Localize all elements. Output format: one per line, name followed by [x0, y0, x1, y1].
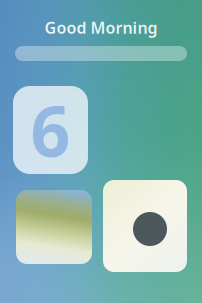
button[interactable]: Search — [15, 46, 187, 61]
staticText: Good Morning — [44, 17, 157, 38]
button[interactable]: Photo, hillside — [16, 190, 92, 264]
staticText: 6 — [30, 84, 70, 176]
button[interactable]: Photo, portrait — [103, 180, 187, 272]
button[interactable]: 6 — [13, 86, 88, 174]
